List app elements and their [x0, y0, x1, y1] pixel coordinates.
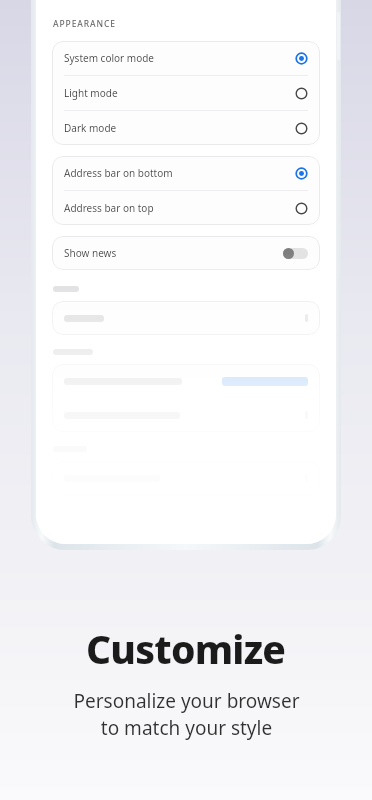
staticText: Show news: [64, 246, 283, 260]
button[interactable]: Address bar on top: [52, 191, 320, 225]
staticText: Address bar on top: [64, 201, 295, 215]
button[interactable]: Dark mode: [52, 111, 320, 145]
button[interactable]: Address bar on bottom: [52, 156, 320, 190]
button[interactable]: Light mode: [52, 76, 320, 110]
staticText: System color mode: [64, 51, 295, 65]
staticText: Customize: [86, 622, 286, 675]
button[interactable]: System color mode: [52, 41, 320, 75]
staticText: Dark mode: [64, 121, 295, 135]
staticText: APPEARANCE: [53, 18, 116, 30]
staticText: Personalize your browser to match your s…: [73, 688, 300, 741]
button[interactable]: [52, 364, 320, 398]
staticText: Address bar on bottom: [64, 166, 295, 180]
button[interactable]: [52, 301, 320, 335]
button[interactable]: Show news: [52, 236, 320, 270]
staticText: Light mode: [64, 86, 295, 100]
other: Show news toggle, off: [283, 248, 308, 259]
